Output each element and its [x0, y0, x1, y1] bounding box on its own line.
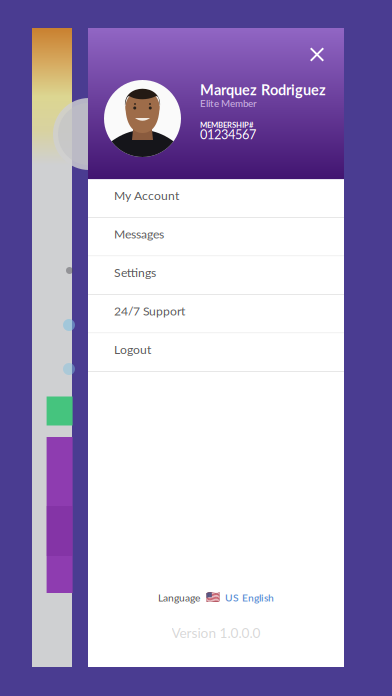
- button[interactable]: Messages: [88, 218, 344, 256]
- button[interactable]: My Account: [88, 179, 344, 218]
- staticText: Logout: [114, 342, 151, 357]
- staticText: MEMBERSHIP#: [200, 120, 253, 129]
- staticText: Elite Member: [200, 97, 257, 109]
- staticText: Messages: [114, 226, 164, 241]
- staticText: Language: [158, 591, 200, 604]
- staticText: Version 1.0.0.0: [171, 625, 260, 641]
- button[interactable]: Logout: [88, 333, 344, 372]
- button[interactable]: Close: [300, 37, 334, 71]
- button[interactable]: Language: [88, 587, 344, 609]
- staticText: Settings: [114, 265, 156, 280]
- staticText: US English: [225, 591, 274, 604]
- button[interactable]: Settings: [88, 256, 344, 295]
- staticText: 01234567: [200, 126, 256, 142]
- staticText: My Account: [114, 188, 179, 203]
- staticText: Marquez Rodriguez: [200, 81, 326, 98]
- button[interactable]: 24/7 Support: [88, 295, 344, 333]
- staticText: 🇺🇸: [206, 591, 220, 604]
- staticText: 24/7 Support: [114, 303, 185, 318]
